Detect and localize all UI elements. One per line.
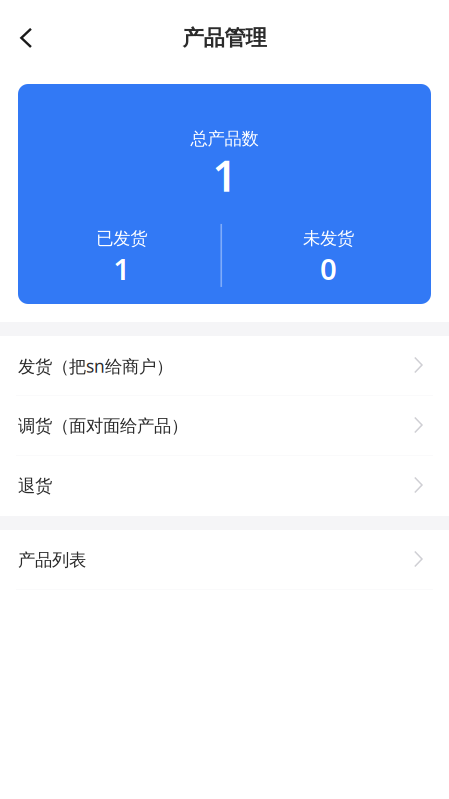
staticText: 产品列表: [18, 549, 86, 571]
staticText: 发货（把sn给商户）: [18, 354, 173, 377]
staticText: 产品管理: [182, 25, 266, 51]
button[interactable]: 退货: [0, 456, 449, 516]
staticText: 1: [113, 249, 130, 288]
staticText: 退货: [18, 475, 52, 497]
staticText: 总产品数: [190, 128, 258, 149]
staticText: 0: [320, 249, 337, 288]
button[interactable]: Back: [0, 12, 52, 60]
staticText: 已发货: [96, 228, 147, 249]
button[interactable]: 产品列表: [0, 530, 449, 590]
staticText: 未发货: [303, 228, 354, 249]
staticText: 调货（面对面给产品）: [18, 415, 188, 437]
button[interactable]: 发货（把sn给商户）: [0, 336, 449, 396]
staticText: 1: [212, 147, 236, 203]
button[interactable]: 调货（面对面给产品）: [0, 396, 449, 456]
